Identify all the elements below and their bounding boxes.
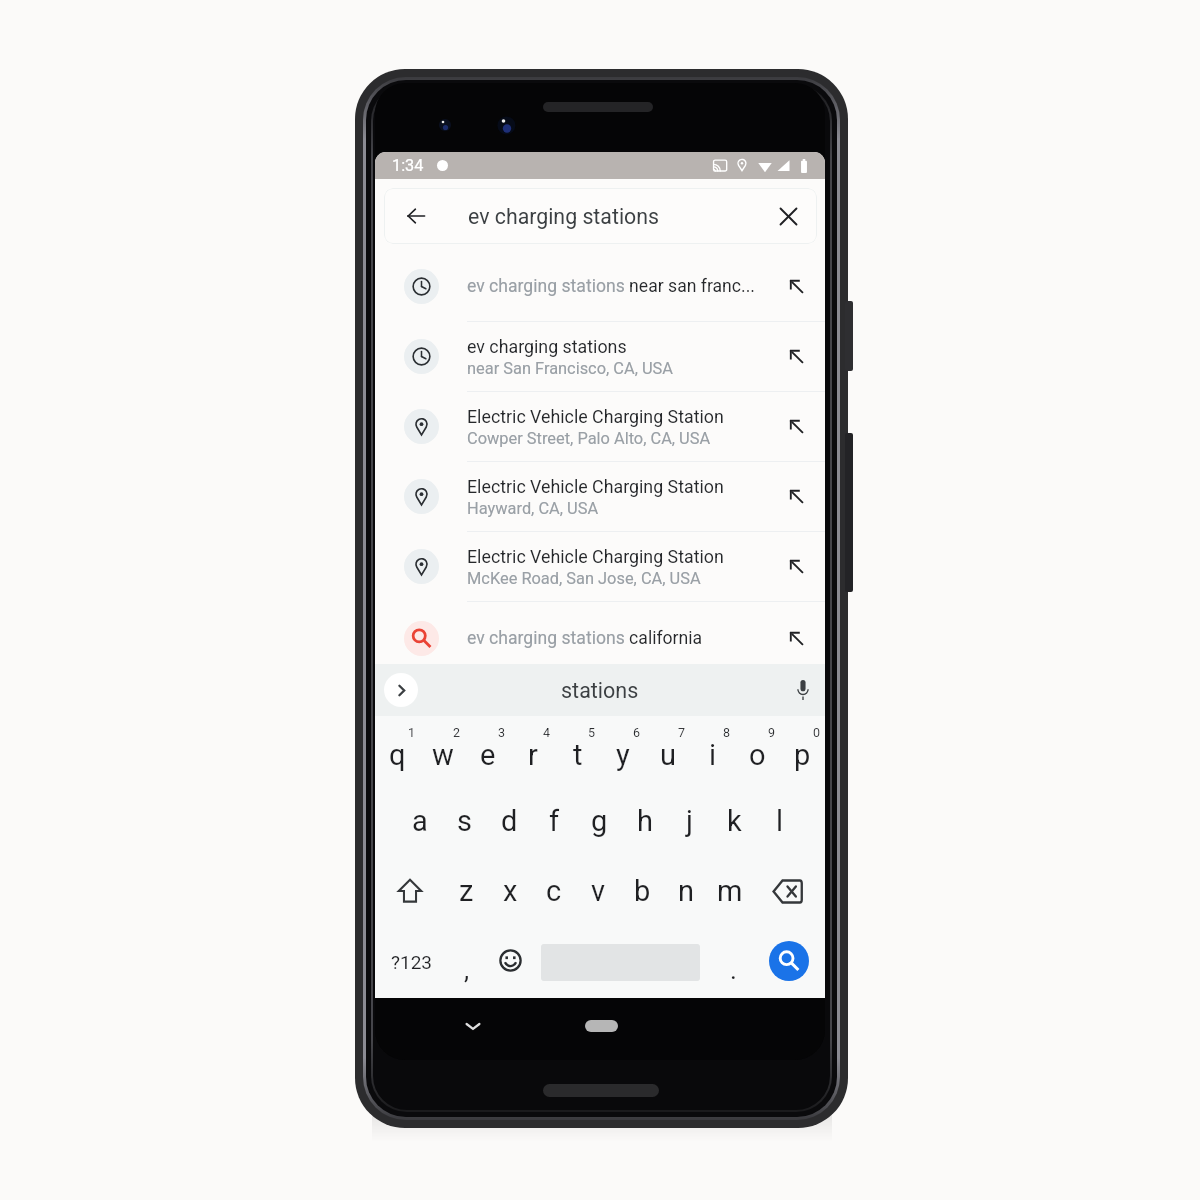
staticText: 7 bbox=[678, 725, 686, 740]
button[interactable]: ?123 bbox=[375, 926, 448, 998]
button[interactable]: h bbox=[622, 786, 667, 856]
staticText: d bbox=[501, 804, 518, 838]
staticText: k bbox=[727, 804, 742, 838]
staticText: x bbox=[503, 874, 518, 908]
staticText: j bbox=[686, 804, 693, 838]
button[interactable]: Back bbox=[392, 192, 440, 240]
staticText: i bbox=[709, 738, 717, 772]
staticText: l bbox=[776, 804, 784, 838]
button[interactable]: More suggestions bbox=[384, 673, 418, 707]
staticText: , bbox=[464, 955, 470, 985]
staticText: m bbox=[717, 874, 743, 908]
staticText: ev charging stations near san franc... bbox=[467, 276, 755, 297]
staticText: near San Francisco, CA, USA bbox=[467, 359, 674, 378]
button[interactable]: ev charging stations bbox=[375, 322, 825, 391]
button[interactable]: Emoji bbox=[485, 926, 536, 998]
button[interactable]: Use suggestion bbox=[769, 462, 825, 531]
staticText: ?123 bbox=[391, 951, 433, 973]
staticText: r bbox=[528, 738, 538, 772]
staticText: u bbox=[660, 738, 676, 772]
button[interactable]: Voice input bbox=[785, 672, 821, 708]
button[interactable]: 2 bbox=[420, 716, 465, 786]
staticText: ev charging stations bbox=[468, 204, 659, 229]
button[interactable]: Shift bbox=[375, 856, 444, 926]
button[interactable]: Back bbox=[384, 188, 817, 244]
button[interactable]: Use suggestion bbox=[769, 322, 825, 391]
staticText: 9 bbox=[768, 725, 776, 740]
staticText: 4 bbox=[543, 725, 551, 740]
staticText: h bbox=[637, 804, 653, 838]
staticText: 5 bbox=[588, 725, 596, 740]
button[interactable]: m bbox=[708, 856, 752, 926]
button[interactable]: n bbox=[664, 856, 708, 926]
button[interactable]: f bbox=[532, 786, 577, 856]
staticText: n bbox=[678, 874, 695, 908]
staticText: a bbox=[412, 804, 428, 838]
staticText: f bbox=[549, 804, 560, 838]
staticText: s bbox=[457, 804, 472, 838]
button[interactable]: 8 bbox=[690, 716, 735, 786]
staticText: b bbox=[634, 874, 651, 908]
button[interactable]: Hide keyboard bbox=[453, 1006, 493, 1046]
staticText: e bbox=[480, 738, 496, 772]
button[interactable]: a bbox=[397, 786, 442, 856]
button[interactable]: Clear search bbox=[764, 192, 812, 240]
staticText: z bbox=[459, 874, 474, 908]
button[interactable]: Search bbox=[769, 941, 809, 981]
button[interactable]: z bbox=[444, 856, 488, 926]
button[interactable]: k bbox=[712, 786, 757, 856]
button[interactable]: g bbox=[577, 786, 622, 856]
button[interactable]: Electric Vehicle Charging Station bbox=[375, 532, 825, 601]
staticText: 3 bbox=[498, 725, 506, 740]
button[interactable]: s bbox=[442, 786, 487, 856]
button[interactable]: Use suggestion bbox=[769, 392, 825, 461]
button[interactable]: Use suggestion bbox=[769, 532, 825, 601]
button[interactable]: Space bbox=[536, 926, 705, 998]
button[interactable]: Electric Vehicle Charging Station bbox=[375, 392, 825, 461]
staticText: y bbox=[616, 738, 630, 772]
button[interactable]: Home bbox=[585, 1020, 618, 1032]
button[interactable]: ev charging stations california bbox=[375, 607, 825, 664]
button[interactable]: l bbox=[757, 786, 802, 856]
button[interactable]: j bbox=[667, 786, 712, 856]
staticText: Electric Vehicle Charging Station bbox=[467, 406, 724, 427]
button[interactable]: v bbox=[576, 856, 620, 926]
button[interactable]: b bbox=[620, 856, 664, 926]
staticText: g bbox=[591, 804, 608, 838]
staticText: ev charging stations california bbox=[467, 628, 703, 649]
button[interactable]: 6 bbox=[600, 716, 645, 786]
staticText: q bbox=[389, 738, 406, 772]
button[interactable]: 7 bbox=[645, 716, 690, 786]
button[interactable]: 0 bbox=[780, 716, 825, 786]
button[interactable]: Use suggestion bbox=[769, 252, 825, 321]
button[interactable]: c bbox=[532, 856, 576, 926]
staticText: 1 bbox=[408, 725, 416, 740]
staticText: stations bbox=[561, 678, 639, 703]
button[interactable]: 9 bbox=[735, 716, 780, 786]
staticText: . bbox=[730, 955, 737, 985]
button[interactable]: 1 bbox=[375, 716, 420, 786]
button[interactable]: 4 bbox=[510, 716, 555, 786]
button[interactable]: d bbox=[487, 786, 532, 856]
staticText: o bbox=[749, 738, 766, 772]
staticText: Hayward, CA, USA bbox=[467, 499, 599, 518]
staticText: McKee Road, San Jose, CA, USA bbox=[467, 569, 701, 588]
button[interactable]: . bbox=[711, 926, 756, 998]
button[interactable]: Electric Vehicle Charging Station bbox=[375, 462, 825, 531]
button[interactable]: 5 bbox=[555, 716, 600, 786]
button[interactable]: , bbox=[448, 926, 485, 998]
staticText: t bbox=[573, 738, 583, 772]
staticText: v bbox=[591, 874, 606, 908]
staticText: Electric Vehicle Charging Station bbox=[467, 546, 724, 567]
staticText: 8 bbox=[723, 725, 731, 740]
staticText: ev charging stations bbox=[467, 336, 627, 357]
button[interactable]: 3 bbox=[465, 716, 510, 786]
staticText: c bbox=[546, 874, 562, 908]
button[interactable]: Backspace bbox=[752, 856, 823, 926]
staticText: p bbox=[794, 738, 811, 772]
button[interactable]: x bbox=[488, 856, 532, 926]
button[interactable]: Use suggestion bbox=[769, 607, 825, 664]
staticText: 6 bbox=[633, 725, 641, 740]
staticText: w bbox=[432, 738, 454, 772]
button[interactable]: ev charging stations near san franc... bbox=[375, 252, 825, 321]
